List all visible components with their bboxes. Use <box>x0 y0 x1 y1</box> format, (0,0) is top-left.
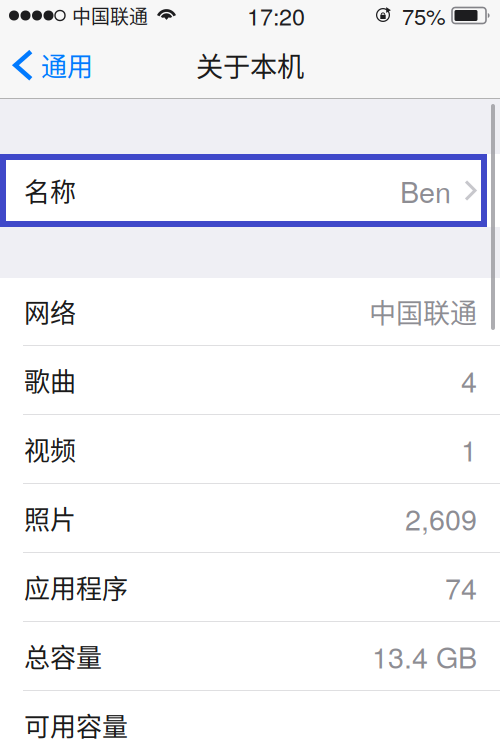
staticText: 17:20 <box>247 0 305 32</box>
button[interactable]: 应用程序 <box>0 553 500 621</box>
staticText: 1 <box>461 428 477 470</box>
staticText: 75% <box>402 0 446 31</box>
button[interactable]: 照片 <box>0 484 500 552</box>
staticText: 关于本机 <box>196 45 304 85</box>
button[interactable]: 网络 <box>0 278 500 345</box>
staticText: 视频 <box>24 430 76 468</box>
button[interactable]: 歌曲 <box>0 346 500 414</box>
staticText: 中国联通 <box>369 292 477 331</box>
staticText: 中国联通 <box>72 2 148 29</box>
staticText: 网络 <box>24 293 76 330</box>
staticText: 4 <box>461 359 477 401</box>
staticText: 总容量 <box>24 637 102 675</box>
staticText: 照片 <box>24 499 76 537</box>
staticText: 74 <box>445 566 477 608</box>
button[interactable]: 名称 <box>0 154 500 227</box>
button[interactable]: 视频 <box>0 415 500 483</box>
staticText: 13.4 GB <box>372 635 477 677</box>
staticText: 2,609 <box>405 497 477 539</box>
button[interactable]: 总容量 <box>0 622 500 690</box>
staticText: 可用容量 <box>24 706 128 744</box>
staticText: 歌曲 <box>24 361 76 399</box>
button[interactable]: 可用容量 <box>0 691 500 750</box>
staticText: 通用 <box>41 46 93 84</box>
staticText: Ben <box>400 170 451 211</box>
staticText: 应用程序 <box>24 568 128 606</box>
staticText: 名称 <box>24 172 76 209</box>
button[interactable]: 通用 <box>0 31 103 99</box>
